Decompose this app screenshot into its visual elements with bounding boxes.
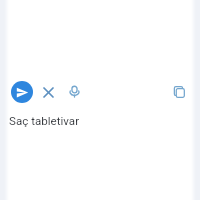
button[interactable]: Send xyxy=(11,81,33,103)
button[interactable]: Copy xyxy=(169,81,190,102)
button[interactable]: Microphone xyxy=(64,81,85,102)
staticText: Saç tabletivar xyxy=(9,114,80,128)
button[interactable]: Close xyxy=(38,82,58,102)
